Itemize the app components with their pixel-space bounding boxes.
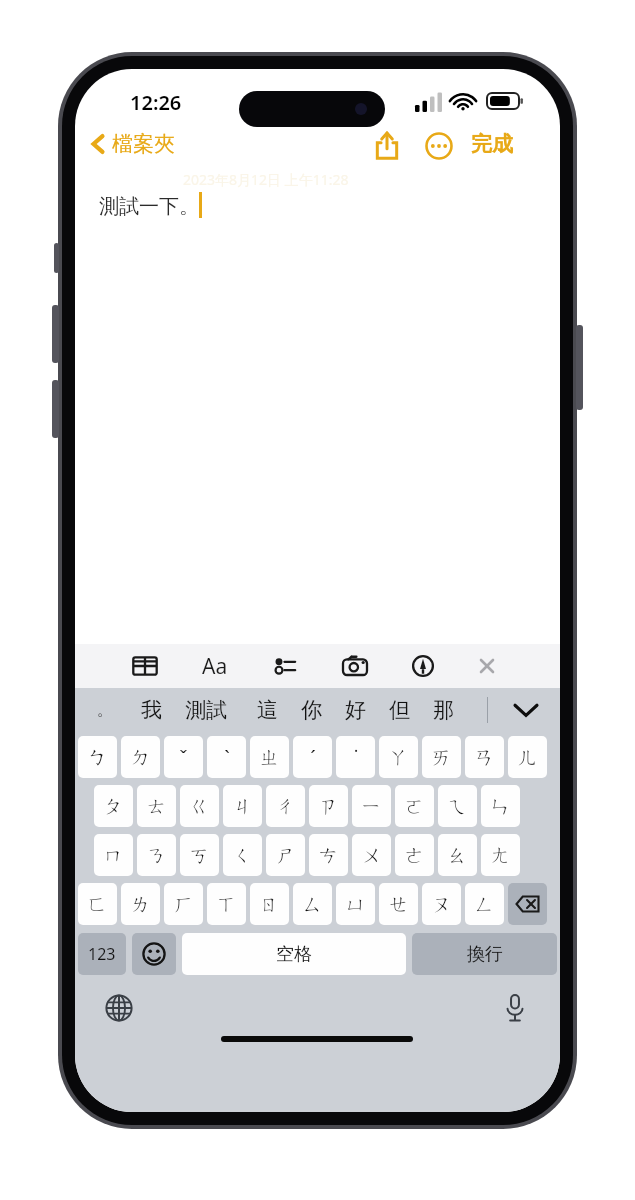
button[interactable]: ㄋ xyxy=(137,834,176,876)
button[interactable]: ㄌ xyxy=(121,883,160,925)
button[interactable]: ㄍ xyxy=(180,785,219,827)
button[interactable]: ㄞ xyxy=(422,736,461,778)
button[interactable]: ˙ xyxy=(336,736,375,778)
button[interactable]: ㄏ xyxy=(164,883,203,925)
button[interactable]: ㄊ xyxy=(137,785,176,827)
button[interactable]: ㄓ xyxy=(250,736,289,778)
button[interactable]: 這 xyxy=(251,688,284,732)
button[interactable]: 測試 xyxy=(179,688,233,732)
button[interactable]: Emoji xyxy=(132,933,176,975)
button[interactable]: ㄧ xyxy=(352,785,391,827)
staticText: ㄡ xyxy=(431,892,452,917)
button[interactable]: ㄔ xyxy=(266,785,305,827)
staticText: ㄊ xyxy=(146,794,167,819)
button[interactable]: Share xyxy=(370,128,404,162)
button[interactable]: ㄟ xyxy=(438,785,477,827)
button[interactable]: ㄚ xyxy=(379,736,418,778)
button[interactable]: ˋ xyxy=(207,736,246,778)
staticText: ㄇ xyxy=(103,843,124,868)
button[interactable]: ㄕ xyxy=(266,834,305,876)
button[interactable]: 完成 xyxy=(463,127,521,161)
button[interactable]: ˇ xyxy=(164,736,203,778)
button[interactable]: ㄤ xyxy=(481,834,520,876)
button[interactable]: 123 xyxy=(78,933,126,975)
button[interactable]: Switch keyboard language xyxy=(97,986,141,1030)
button[interactable]: Text format xyxy=(193,644,237,688)
staticText: ㄔ xyxy=(275,794,296,819)
button[interactable]: ㄎ xyxy=(180,834,219,876)
button[interactable]: ㄘ xyxy=(309,834,348,876)
button[interactable]: ㄆ xyxy=(94,785,133,827)
button[interactable]: 。 xyxy=(91,688,118,732)
button[interactable]: ㄒ xyxy=(207,883,246,925)
button[interactable]: ㄇ xyxy=(94,834,133,876)
button[interactable]: ㄣ xyxy=(481,785,520,827)
staticText: ㄨ xyxy=(361,843,382,868)
button[interactable]: Insert table xyxy=(123,644,167,688)
button[interactable]: ㄑ xyxy=(223,834,262,876)
button[interactable]: ㄗ xyxy=(309,785,348,827)
button[interactable]: Backspace xyxy=(508,883,547,925)
button[interactable]: 那 xyxy=(427,688,460,732)
button[interactable]: Dictate xyxy=(493,986,537,1030)
button[interactable]: ㄢ xyxy=(465,736,504,778)
button[interactable]: ㄝ xyxy=(379,883,418,925)
button[interactable]: 檔案夾 xyxy=(85,127,181,161)
staticText: 我 xyxy=(141,697,162,723)
staticText: ㄩ xyxy=(345,892,366,917)
staticText: ㄎ xyxy=(189,843,210,868)
button[interactable]: ㄙ xyxy=(293,883,332,925)
button[interactable]: More options xyxy=(423,130,455,162)
staticText: 這 xyxy=(257,697,278,723)
button[interactable]: ㄜ xyxy=(395,834,434,876)
button[interactable]: 你 xyxy=(295,688,328,732)
staticText: ㄘ xyxy=(318,843,339,868)
button[interactable]: ㄅ xyxy=(78,736,117,778)
button[interactable]: ㄠ xyxy=(438,834,477,876)
staticText: ˇ xyxy=(179,744,188,771)
button[interactable]: Markup xyxy=(401,644,445,688)
staticText: ㄐ xyxy=(232,794,253,819)
button[interactable]: 我 xyxy=(135,688,168,732)
button[interactable]: ㄛ xyxy=(395,785,434,827)
staticText: 那 xyxy=(433,697,454,723)
staticText: ㄅ xyxy=(87,745,108,770)
staticText: ㄚ xyxy=(388,745,409,770)
button[interactable]: ㄉ xyxy=(121,736,160,778)
button[interactable]: ㄖ xyxy=(250,883,289,925)
staticText: 空格 xyxy=(276,943,312,966)
button[interactable]: ㄩ xyxy=(336,883,375,925)
staticText: ㄆ xyxy=(103,794,124,819)
staticText: ㄣ xyxy=(490,794,511,819)
staticText: ㄍ xyxy=(189,794,210,819)
button[interactable]: Camera xyxy=(333,644,377,688)
staticText: ㄞ xyxy=(431,745,452,770)
staticText: 你 xyxy=(301,697,322,723)
staticText: ㄤ xyxy=(490,843,511,868)
button[interactable]: ㄦ xyxy=(508,736,547,778)
staticText: ㄜ xyxy=(404,843,425,868)
staticText: ˋ xyxy=(224,744,230,771)
button[interactable]: ˊ xyxy=(293,736,332,778)
button[interactable]: ㄈ xyxy=(78,883,117,925)
button[interactable]: Close keyboard xyxy=(465,644,509,688)
button[interactable]: ㄡ xyxy=(422,883,461,925)
staticText: ㄈ xyxy=(87,892,108,917)
staticText: ㄧ xyxy=(361,794,382,819)
staticText: 換行 xyxy=(467,943,503,966)
staticText: ˊ xyxy=(310,744,316,771)
button[interactable]: ㄐ xyxy=(223,785,262,827)
button[interactable]: 空格 xyxy=(182,933,406,975)
button[interactable]: ㄥ xyxy=(465,883,504,925)
staticText: 完成 xyxy=(471,131,513,157)
staticText: ㄒ xyxy=(216,892,237,917)
button[interactable]: 2023年8月12日 上午11:28 xyxy=(75,169,560,644)
button[interactable]: Checklist xyxy=(263,644,307,688)
button[interactable]: 但 xyxy=(383,688,416,732)
staticText: ㄙ xyxy=(302,892,323,917)
button[interactable]: ㄨ xyxy=(352,834,391,876)
button[interactable]: Expand candidates xyxy=(505,692,547,728)
button[interactable]: 換行 xyxy=(412,933,557,975)
staticText: 但 xyxy=(389,697,410,723)
button[interactable]: 好 xyxy=(339,688,372,732)
